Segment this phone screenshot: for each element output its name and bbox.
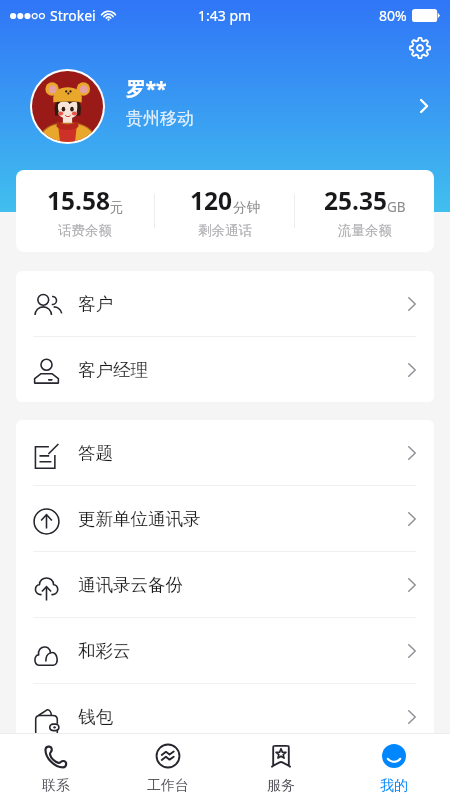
staticText: 分钟 bbox=[233, 199, 260, 216]
button[interactable]: 工作台 bbox=[112, 734, 224, 800]
button[interactable]: 和彩云 bbox=[16, 618, 434, 683]
staticText: 客户经理 bbox=[78, 359, 148, 381]
staticText: 客户 bbox=[78, 293, 113, 315]
staticText: 1:43 pm bbox=[198, 6, 252, 25]
staticText: Strokei bbox=[50, 6, 96, 25]
staticText: 工作台 bbox=[147, 777, 189, 795]
button[interactable]: Settings bbox=[403, 31, 437, 65]
button[interactable]: 25.35 bbox=[295, 170, 434, 252]
button[interactable]: 更新单位通讯录 bbox=[16, 486, 434, 551]
button[interactable]: 客户 bbox=[16, 271, 434, 336]
staticText: 罗** bbox=[126, 75, 167, 102]
button[interactable]: 15.58 bbox=[16, 170, 154, 252]
staticText: 答题 bbox=[78, 442, 113, 464]
button[interactable]: 120 bbox=[155, 170, 294, 252]
staticText: 更新单位通讯录 bbox=[78, 508, 201, 530]
staticText: 流量余额 bbox=[338, 222, 392, 239]
staticText: 我的 bbox=[380, 777, 408, 795]
staticText: 剩余通话 bbox=[198, 222, 252, 239]
staticText: 话费余额 bbox=[58, 222, 112, 239]
button[interactable]: 服务 bbox=[224, 734, 337, 800]
staticText: 联系 bbox=[42, 777, 70, 795]
staticText: 120 bbox=[190, 184, 233, 217]
staticText: 元 bbox=[110, 199, 124, 216]
button[interactable]: 答题 bbox=[16, 420, 434, 485]
staticText: 服务 bbox=[267, 777, 295, 795]
staticText: 通讯录云备份 bbox=[78, 574, 183, 596]
staticText: 80% bbox=[379, 6, 407, 25]
staticText: 25.35 bbox=[324, 184, 387, 217]
button[interactable]: 我的 bbox=[337, 734, 450, 800]
button[interactable]: 客户经理 bbox=[16, 337, 434, 402]
button[interactable]: 钱包 bbox=[16, 684, 434, 749]
button[interactable]: 通讯录云备份 bbox=[16, 552, 434, 617]
staticText: 钱包 bbox=[78, 706, 113, 728]
staticText: 和彩云 bbox=[78, 640, 131, 662]
button[interactable]: 罗** bbox=[0, 66, 450, 146]
staticText: 15.58 bbox=[47, 184, 110, 217]
staticText: 贵州移动 bbox=[126, 108, 194, 129]
staticText: GB bbox=[387, 198, 406, 216]
button[interactable]: 联系 bbox=[0, 734, 112, 800]
